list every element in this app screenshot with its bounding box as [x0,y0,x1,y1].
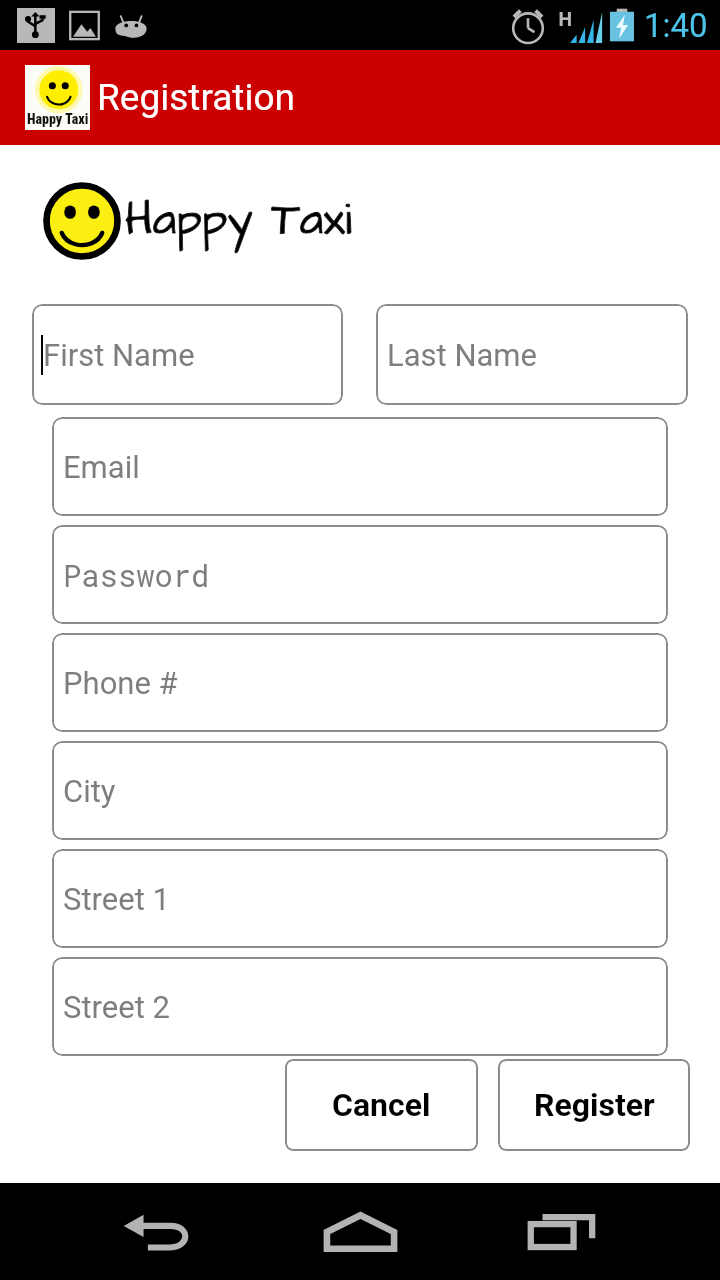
button[interactable]: Last Name [376,304,688,405]
staticText: 1:40 [644,6,708,45]
staticText: Last Name [387,337,537,373]
staticText: City [63,773,116,809]
button[interactable]: Cancel [285,1059,478,1151]
staticText: Phone # [63,665,178,701]
staticText: Street 1 [63,881,170,917]
button[interactable]: Back [57,1183,259,1280]
button[interactable]: First Name [32,304,343,405]
button[interactable]: Recent apps [461,1183,663,1280]
button[interactable]: Email [52,417,668,516]
button[interactable]: Home [259,1183,461,1280]
staticText: H [558,6,573,32]
button[interactable]: Password [52,525,668,624]
staticText: Email [63,449,140,485]
button[interactable]: Street 1 [52,849,668,948]
button[interactable]: Street 2 [52,957,668,1056]
staticText: Registration [97,76,295,119]
staticText: Cancel [332,1086,431,1124]
staticText: Street 2 [63,989,170,1025]
staticText: Happy Taxi [125,189,352,253]
staticText: First Name [43,337,195,373]
staticText: Happy Taxi [125,189,352,253]
button[interactable]: Register [498,1059,690,1151]
button[interactable]: Phone # [52,633,668,732]
staticText: Password [63,555,210,595]
button[interactable]: City [52,741,668,840]
staticText: Happy Taxi [27,111,89,127]
staticText: Register [534,1086,655,1124]
